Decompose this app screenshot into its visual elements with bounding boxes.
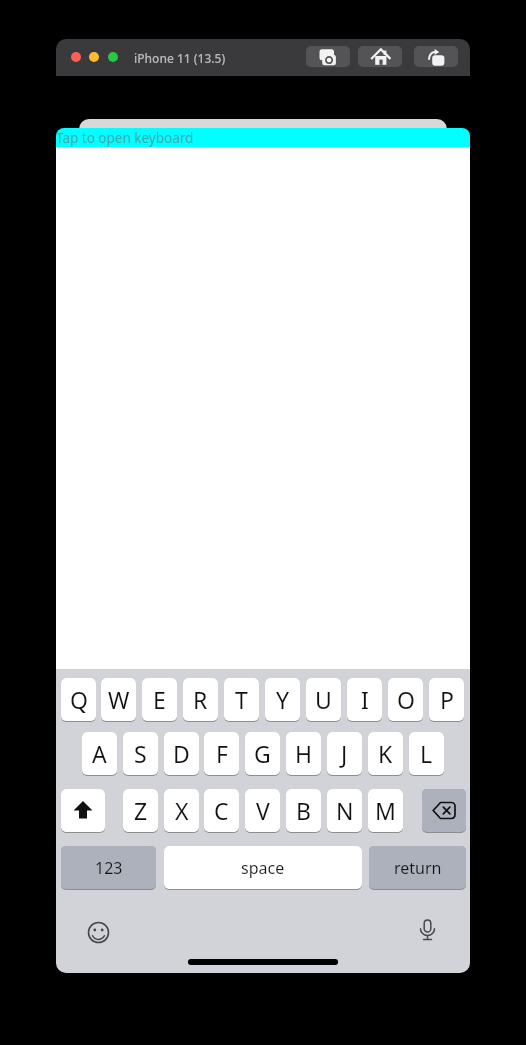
staticText: I [361,684,369,715]
button[interactable]: S [123,732,158,776]
staticText: Z [134,795,148,826]
button[interactable]: I [347,678,382,722]
button[interactable]: X [164,789,199,833]
staticText: P [440,684,454,715]
staticText: R [193,684,208,715]
button[interactable]: B [286,789,321,833]
button[interactable]: E [142,678,177,722]
button[interactable]: G [245,732,280,776]
button[interactable]: Q [61,678,96,722]
button[interactable]: U [306,678,341,722]
button[interactable]: O [388,678,423,722]
staticText: Q [70,684,88,715]
staticText: V [256,795,270,826]
button[interactable] [108,52,118,62]
button[interactable] [61,789,105,833]
staticText: O [397,684,415,715]
button[interactable]: Tap to open keyboard [56,128,470,148]
button[interactable]: space [164,846,362,890]
button[interactable] [422,789,466,833]
button[interactable] [358,46,402,67]
staticText: T [235,684,248,715]
button[interactable]: Z [123,789,158,833]
button[interactable]: C [204,789,239,833]
staticText: iPhone 11 (13.5) [134,50,226,66]
staticText: space [241,857,285,879]
staticText: J [341,738,348,769]
staticText: W [108,684,130,715]
button[interactable]: R [183,678,218,722]
staticText: 123 [95,857,123,879]
button[interactable]: K [368,732,403,776]
staticText: N [336,795,354,826]
staticText: X [175,795,189,826]
button[interactable] [306,46,350,67]
staticText: D [173,738,190,769]
button[interactable]: 123 [61,846,156,890]
button[interactable]: H [286,732,321,776]
staticText: H [295,738,313,769]
button[interactable]: L [409,732,444,776]
button[interactable]: return [369,846,466,890]
staticText: A [92,738,107,769]
button[interactable]: F [204,732,239,776]
staticText: return [394,857,442,879]
staticText: K [378,738,393,769]
button[interactable]: M [368,789,403,833]
staticText: E [153,684,166,715]
staticText: F [216,738,228,769]
staticText: Tap to open keyboard [56,129,194,147]
button[interactable] [416,919,439,942]
button[interactable] [89,52,99,62]
button[interactable]: D [164,732,199,776]
button[interactable]: N [327,789,362,833]
button[interactable]: P [429,678,464,722]
button[interactable]: T [224,678,259,722]
button[interactable]: V [245,789,280,833]
staticText: S [134,738,147,769]
staticText: M [375,795,396,826]
staticText: Y [276,684,290,715]
staticText: L [420,738,433,769]
button[interactable]: W [101,678,136,722]
button[interactable]: A [82,732,117,776]
staticText: C [214,795,229,826]
staticText: U [315,684,332,715]
button[interactable]: Y [265,678,300,722]
button[interactable] [71,52,81,62]
button[interactable] [414,46,458,67]
button[interactable]: J [327,732,362,776]
button[interactable] [87,921,110,944]
staticText: G [254,738,271,769]
staticText: B [296,795,311,826]
